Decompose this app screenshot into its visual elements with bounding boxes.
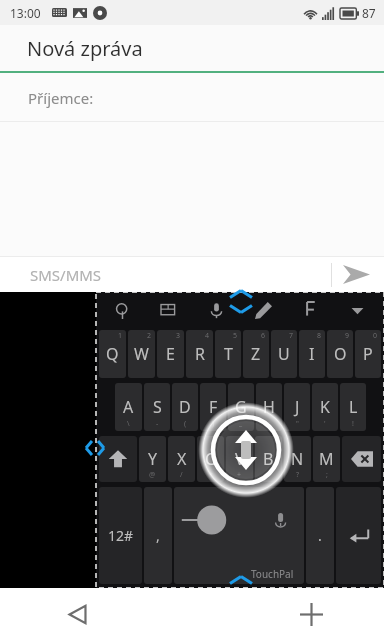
- staticText: ,: [156, 526, 160, 545]
- button[interactable]: Space: [174, 487, 304, 584]
- staticText: 9: [345, 331, 350, 341]
- staticText: 12#: [108, 526, 134, 545]
- button[interactable]: 12#: [99, 487, 142, 584]
- staticText: .: [318, 526, 322, 545]
- button[interactable]: 7: [271, 330, 297, 378]
- staticText: ': [324, 419, 326, 429]
- button[interactable]: F: [200, 383, 226, 431]
- staticText: B: [263, 448, 274, 470]
- staticText: TouchPal: [251, 567, 294, 581]
- button[interactable]: 1: [99, 330, 126, 378]
- button[interactable]: More: [334, 295, 381, 325]
- staticText: I: [309, 343, 315, 365]
- button[interactable]: 3: [157, 330, 184, 378]
- staticText: G: [235, 396, 247, 418]
- button[interactable]: 2: [128, 330, 155, 378]
- button[interactable]: .: [306, 487, 334, 584]
- button[interactable]: 9: [327, 330, 353, 378]
- staticText: @: [149, 470, 156, 480]
- staticText: H: [263, 396, 275, 418]
- staticText: 2: [147, 331, 152, 341]
- button[interactable]: Add: [290, 593, 332, 635]
- button[interactable]: 4: [186, 330, 213, 378]
- staticText: V: [235, 448, 245, 470]
- button[interactable]: Back: [56, 593, 98, 635]
- staticText: Příjemce:: [28, 88, 94, 108]
- staticText: *: [209, 470, 213, 480]
- staticText: 13:00: [10, 5, 41, 21]
- button[interactable]: 0: [355, 330, 381, 378]
- button[interactable]: Theme: [240, 295, 287, 325]
- button[interactable]: 8: [299, 330, 325, 378]
- button[interactable]: B: [255, 436, 282, 482]
- staticText: W: [134, 343, 149, 365]
- staticText: (: [184, 419, 187, 429]
- staticText: D: [179, 396, 191, 418]
- button[interactable]: 6: [243, 330, 269, 378]
- staticText: N: [291, 448, 304, 470]
- staticText: 6: [261, 331, 266, 341]
- button[interactable]: M: [313, 436, 340, 482]
- staticText: :: [268, 419, 270, 429]
- button[interactable]: 5: [215, 330, 241, 378]
- staticText: R: [195, 343, 205, 365]
- button[interactable]: Shift: [99, 436, 137, 482]
- button[interactable]: V: [226, 436, 253, 482]
- staticText: Y: [148, 448, 158, 470]
- button[interactable]: Backspace: [342, 436, 381, 482]
- staticText: ): [212, 419, 215, 429]
- button[interactable]: D: [172, 383, 198, 431]
- staticText: U: [278, 343, 290, 365]
- staticText: T: [224, 343, 233, 365]
- staticText: ;: [326, 470, 328, 480]
- staticText: K: [320, 396, 330, 418]
- staticText: ": [296, 419, 299, 429]
- staticText: +: [237, 470, 242, 480]
- button[interactable]: J: [284, 383, 310, 431]
- button[interactable]: X: [168, 436, 195, 482]
- staticText: 87: [362, 5, 376, 21]
- button[interactable]: Voice input: [193, 295, 240, 325]
- staticText: _: [239, 419, 243, 429]
- staticText: F: [209, 396, 218, 418]
- staticText: -: [156, 419, 159, 429]
- button[interactable]: K: [312, 383, 338, 431]
- staticText: Q: [106, 343, 119, 365]
- staticText: L: [349, 396, 358, 418]
- button[interactable]: Send: [338, 257, 374, 292]
- button[interactable]: SMS/MMS: [30, 265, 102, 285]
- button[interactable]: L: [340, 383, 366, 431]
- staticText: O: [334, 343, 347, 365]
- button[interactable]: Příjemce:: [0, 73, 384, 122]
- button[interactable]: ,: [144, 487, 172, 584]
- button[interactable]: S: [144, 383, 170, 431]
- staticText: ?: [296, 470, 300, 480]
- staticText: P: [363, 343, 373, 365]
- button[interactable]: A: [115, 383, 142, 431]
- button[interactable]: Clipboard: [146, 295, 193, 325]
- button[interactable]: N: [284, 436, 311, 482]
- staticText: 3: [176, 331, 181, 341]
- staticText: !: [352, 419, 354, 429]
- staticText: X: [177, 448, 187, 470]
- staticText: J: [295, 396, 300, 418]
- button[interactable]: C: [197, 436, 224, 482]
- staticText: 1: [118, 331, 123, 341]
- staticText: \: [127, 419, 130, 429]
- button[interactable]: Y: [139, 436, 166, 482]
- button[interactable]: Enter: [336, 487, 381, 584]
- staticText: 0: [373, 331, 378, 341]
- staticText: C: [205, 448, 216, 470]
- staticText: 7: [289, 331, 294, 341]
- staticText: S: [153, 396, 162, 418]
- button[interactable]: Nová zpráva: [27, 35, 143, 62]
- button[interactable]: Handwriting: [99, 295, 146, 325]
- staticText: A: [123, 396, 134, 418]
- staticText: Z: [251, 343, 261, 365]
- button[interactable]: H: [256, 383, 282, 431]
- staticText: M: [319, 448, 334, 470]
- staticText: E: [166, 343, 175, 365]
- button[interactable]: G: [228, 383, 254, 431]
- staticText: 4: [205, 331, 210, 341]
- button[interactable]: Translate: [287, 295, 334, 325]
